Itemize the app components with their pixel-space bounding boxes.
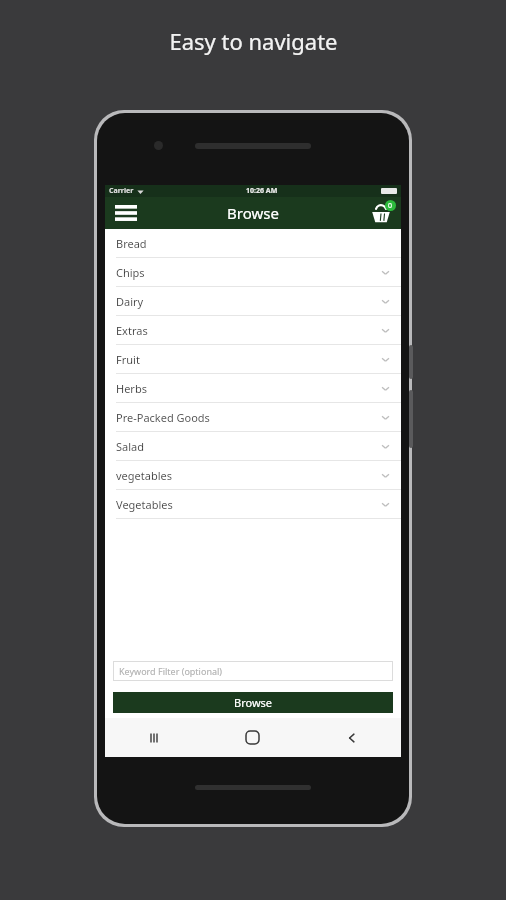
button[interactable]: Herbs [105,374,401,403]
button[interactable]: Bread [105,229,401,258]
button[interactable]: Chips [105,258,401,287]
button[interactable]: Keyword Filter (optional) [113,661,393,681]
staticText: Carrier [109,186,134,196]
staticText: Vegetables [116,497,173,512]
button[interactable]: Fruit [105,345,401,374]
staticText: Extras [116,323,148,338]
button[interactable]: vegetables [105,461,401,490]
button[interactable]: Recents [105,718,203,757]
button[interactable]: Browse [113,692,393,713]
staticText: vegetables [116,468,172,483]
staticText: Browse [234,695,273,710]
staticText: Salad [116,439,144,454]
staticText: Easy to navigate [169,26,338,56]
staticText: 0 [388,201,393,211]
staticText: 10:26 AM [246,186,278,196]
staticText: Fruit [116,352,140,367]
button[interactable]: Dairy [105,287,401,316]
staticText: Herbs [116,381,147,396]
button[interactable]: Menu [111,198,141,228]
button[interactable]: Salad [105,432,401,461]
button[interactable]: Cart [365,197,397,229]
button[interactable]: Extras [105,316,401,345]
staticText: Chips [116,265,145,280]
staticText: Browse [227,203,279,223]
staticText: Bread [116,236,147,251]
staticText: Dairy [116,294,144,309]
button[interactable]: Vegetables [105,490,401,519]
staticText: Keyword Filter (optional) [119,665,223,677]
button[interactable]: Back [302,718,401,757]
staticText: Pre-Packed Goods [116,410,210,425]
button[interactable]: Home [203,718,302,757]
button[interactable]: Pre-Packed Goods [105,403,401,432]
